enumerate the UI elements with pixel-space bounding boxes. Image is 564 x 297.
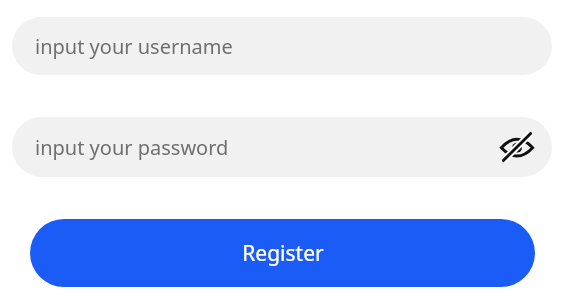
staticText: Register (242, 239, 324, 268)
button[interactable]: input your password (12, 117, 552, 177)
button[interactable]: Register (30, 219, 535, 287)
staticText: input your username (35, 33, 233, 60)
button[interactable]: input your username (12, 17, 552, 75)
staticText: input your password (35, 134, 229, 161)
button[interactable]: Show password (496, 126, 538, 168)
